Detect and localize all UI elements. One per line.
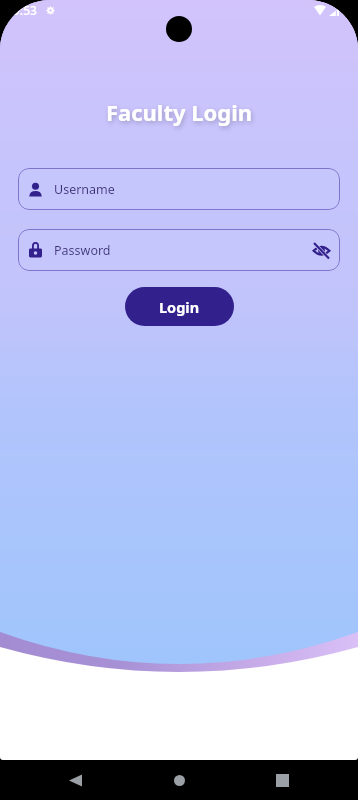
button[interactable]: Back [55, 760, 95, 800]
button[interactable]: Username [18, 168, 340, 210]
button[interactable]: Password [18, 229, 340, 271]
button[interactable]: Show password [308, 237, 334, 263]
button[interactable]: Recent apps [262, 760, 302, 800]
staticText: Username [54, 181, 115, 198]
staticText: 9:53 [13, 2, 37, 18]
button[interactable]: Home [159, 760, 199, 800]
staticText: Faculty Login [0, 97, 358, 127]
staticText: Password [54, 242, 111, 259]
button[interactable]: Login [125, 287, 234, 326]
staticText: Login [159, 297, 200, 317]
